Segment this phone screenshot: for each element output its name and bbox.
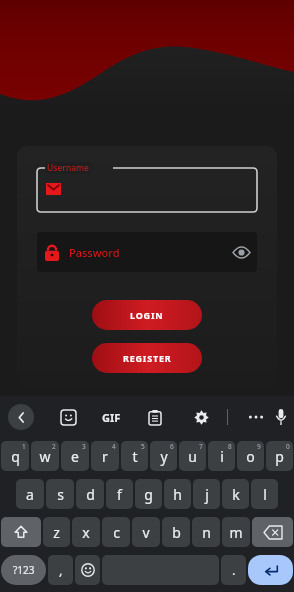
button[interactable]: Emoji bbox=[75, 555, 100, 585]
staticText: s bbox=[57, 485, 64, 504]
button[interactable]: Password bbox=[37, 232, 257, 272]
staticText: 0 bbox=[286, 442, 290, 451]
staticText: r bbox=[102, 447, 108, 466]
button[interactable]: p bbox=[266, 441, 293, 471]
staticText: o bbox=[246, 447, 255, 466]
button[interactable]: e bbox=[61, 441, 89, 471]
button[interactable]: j bbox=[193, 479, 220, 509]
staticText: 9 bbox=[257, 442, 261, 451]
staticText: u bbox=[188, 447, 197, 466]
staticText: Password bbox=[69, 245, 120, 260]
staticText: y bbox=[160, 447, 168, 466]
staticText: m bbox=[229, 523, 243, 542]
button[interactable]: f bbox=[106, 479, 133, 509]
staticText: 4 bbox=[112, 442, 116, 451]
button[interactable]: t bbox=[121, 441, 148, 471]
button[interactable]: s bbox=[46, 479, 74, 509]
staticText: q bbox=[11, 447, 20, 466]
staticText: z bbox=[53, 523, 60, 542]
staticText: 8 bbox=[228, 442, 232, 451]
button[interactable]: w bbox=[31, 441, 59, 471]
button[interactable]: LOGIN bbox=[92, 300, 202, 330]
staticText: . bbox=[232, 561, 236, 579]
button[interactable]: Backspace bbox=[252, 517, 293, 547]
button[interactable]: GIF bbox=[102, 405, 121, 429]
button[interactable]: y bbox=[150, 441, 177, 471]
staticText: k bbox=[232, 485, 240, 504]
button[interactable]: d bbox=[76, 479, 104, 509]
button[interactable]: z bbox=[43, 517, 70, 547]
staticText: v bbox=[142, 523, 150, 542]
staticText: j bbox=[205, 485, 209, 504]
button[interactable]: q bbox=[1, 441, 29, 471]
button[interactable]: i bbox=[208, 441, 235, 471]
staticText: h bbox=[173, 485, 182, 504]
staticText: c bbox=[113, 523, 120, 542]
staticText: 6 bbox=[170, 442, 174, 451]
button[interactable]: a bbox=[16, 479, 44, 509]
button[interactable]: Enter bbox=[248, 555, 293, 585]
staticText: , bbox=[59, 561, 63, 579]
button[interactable]: n bbox=[192, 517, 220, 547]
staticText: e bbox=[71, 447, 79, 466]
button[interactable]: c bbox=[102, 517, 130, 547]
button[interactable]: Clipboard bbox=[143, 405, 167, 429]
staticText: d bbox=[86, 485, 95, 504]
staticText: GIF bbox=[102, 410, 121, 425]
button[interactable]: Show password bbox=[229, 240, 253, 264]
staticText: 7 bbox=[199, 442, 203, 451]
button[interactable]: l bbox=[251, 479, 278, 509]
staticText: p bbox=[275, 447, 284, 466]
staticText: 3 bbox=[82, 442, 86, 451]
button[interactable]: More options bbox=[244, 405, 268, 429]
button[interactable]: Voice input bbox=[268, 404, 294, 430]
staticText: LOGIN bbox=[130, 309, 164, 321]
staticText: i bbox=[220, 447, 224, 466]
staticText: REGISTER bbox=[123, 352, 172, 364]
button[interactable]: Stickers bbox=[56, 405, 80, 429]
staticText: w bbox=[39, 447, 51, 466]
staticText: 1 bbox=[22, 442, 26, 451]
button[interactable]: g bbox=[135, 479, 162, 509]
button[interactable]: Settings bbox=[189, 405, 213, 429]
staticText: 5 bbox=[141, 442, 145, 451]
button[interactable]: REGISTER bbox=[92, 343, 202, 373]
staticText: 2 bbox=[52, 442, 56, 451]
button[interactable]: . bbox=[221, 555, 246, 585]
staticText: a bbox=[26, 485, 34, 504]
button[interactable]: k bbox=[222, 479, 249, 509]
staticText: l bbox=[263, 485, 267, 504]
staticText: x bbox=[82, 523, 90, 542]
staticText: n bbox=[202, 523, 211, 542]
button[interactable]: r bbox=[91, 441, 119, 471]
button[interactable]: v bbox=[132, 517, 160, 547]
button[interactable]: Username bbox=[37, 168, 257, 212]
staticText: Username bbox=[47, 162, 89, 174]
button[interactable]: x bbox=[72, 517, 100, 547]
staticText: g bbox=[144, 485, 153, 504]
button[interactable]: h bbox=[164, 479, 191, 509]
button[interactable]: Shift bbox=[1, 517, 41, 547]
staticText: f bbox=[117, 485, 122, 504]
button[interactable]: Back bbox=[8, 404, 34, 430]
button[interactable]: m bbox=[222, 517, 250, 547]
button[interactable]: b bbox=[162, 517, 190, 547]
button[interactable]: u bbox=[179, 441, 206, 471]
staticText: ?123 bbox=[13, 563, 35, 577]
button[interactable]: ?123 bbox=[1, 555, 46, 585]
staticText: b bbox=[172, 523, 181, 542]
button[interactable]: , bbox=[48, 555, 73, 585]
button[interactable]: o bbox=[237, 441, 264, 471]
staticText: t bbox=[132, 447, 138, 466]
